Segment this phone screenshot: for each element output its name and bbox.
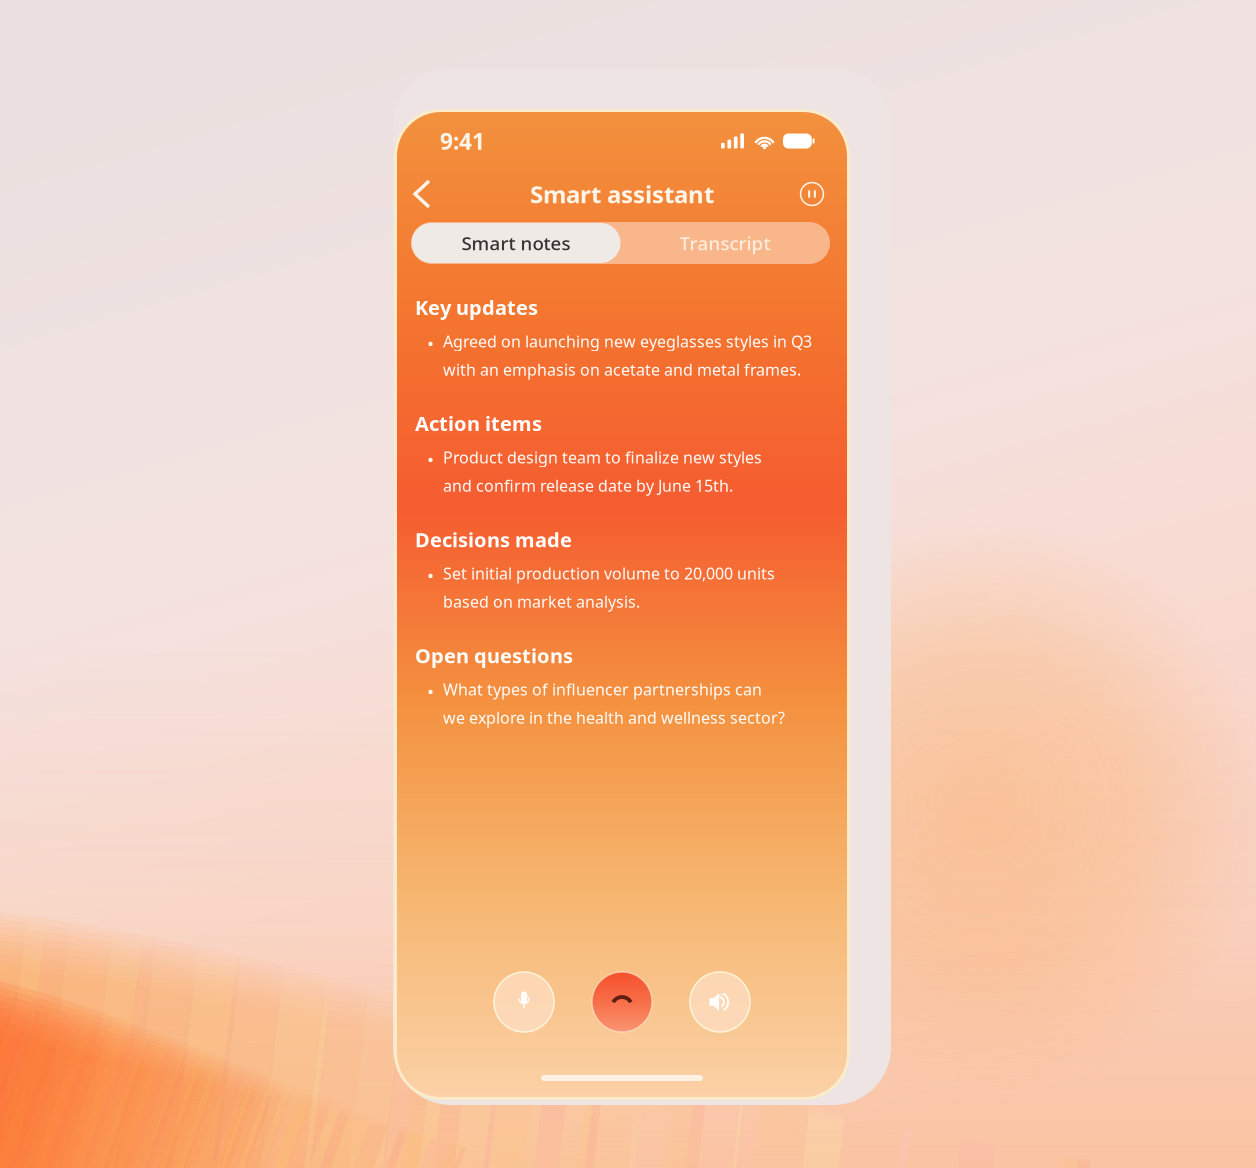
button[interactable]: End call — [592, 972, 652, 1032]
staticText: Key updates — [415, 294, 538, 321]
staticText: Action items — [415, 410, 542, 437]
staticText: • — [427, 563, 434, 587]
staticText: 9:41 — [440, 126, 485, 156]
button[interactable]: Smart notes — [411, 223, 620, 263]
staticText: Decisions made — [415, 526, 572, 553]
staticText: • — [427, 447, 434, 471]
button[interactable]: Transcript — [620, 223, 829, 263]
staticText: Transcript — [679, 231, 770, 255]
staticText: Smart notes — [461, 231, 570, 255]
staticText: Open questions — [415, 642, 573, 669]
staticText: and confirm release date by June 15th. — [443, 475, 733, 496]
staticText: Smart assistant — [530, 178, 714, 210]
staticText: we explore in the health and wellness se… — [443, 707, 785, 728]
button[interactable]: Speaker — [690, 972, 750, 1032]
staticText: with an emphasis on acetate and metal fr… — [443, 359, 801, 380]
button[interactable]: Pause — [790, 172, 834, 216]
staticText: based on market analysis. — [443, 591, 640, 612]
staticText: • — [427, 679, 434, 703]
staticText: Agreed on launching new eyeglasses style… — [443, 331, 812, 352]
staticText: Product design team to finalize new styl… — [443, 447, 762, 468]
staticText: Set initial production volume to 20,000 … — [443, 563, 775, 584]
button[interactable]: Mute — [494, 972, 554, 1032]
staticText: What types of influencer partnerships ca… — [443, 679, 762, 700]
staticText: • — [427, 331, 434, 355]
button[interactable]: Back — [400, 172, 444, 216]
